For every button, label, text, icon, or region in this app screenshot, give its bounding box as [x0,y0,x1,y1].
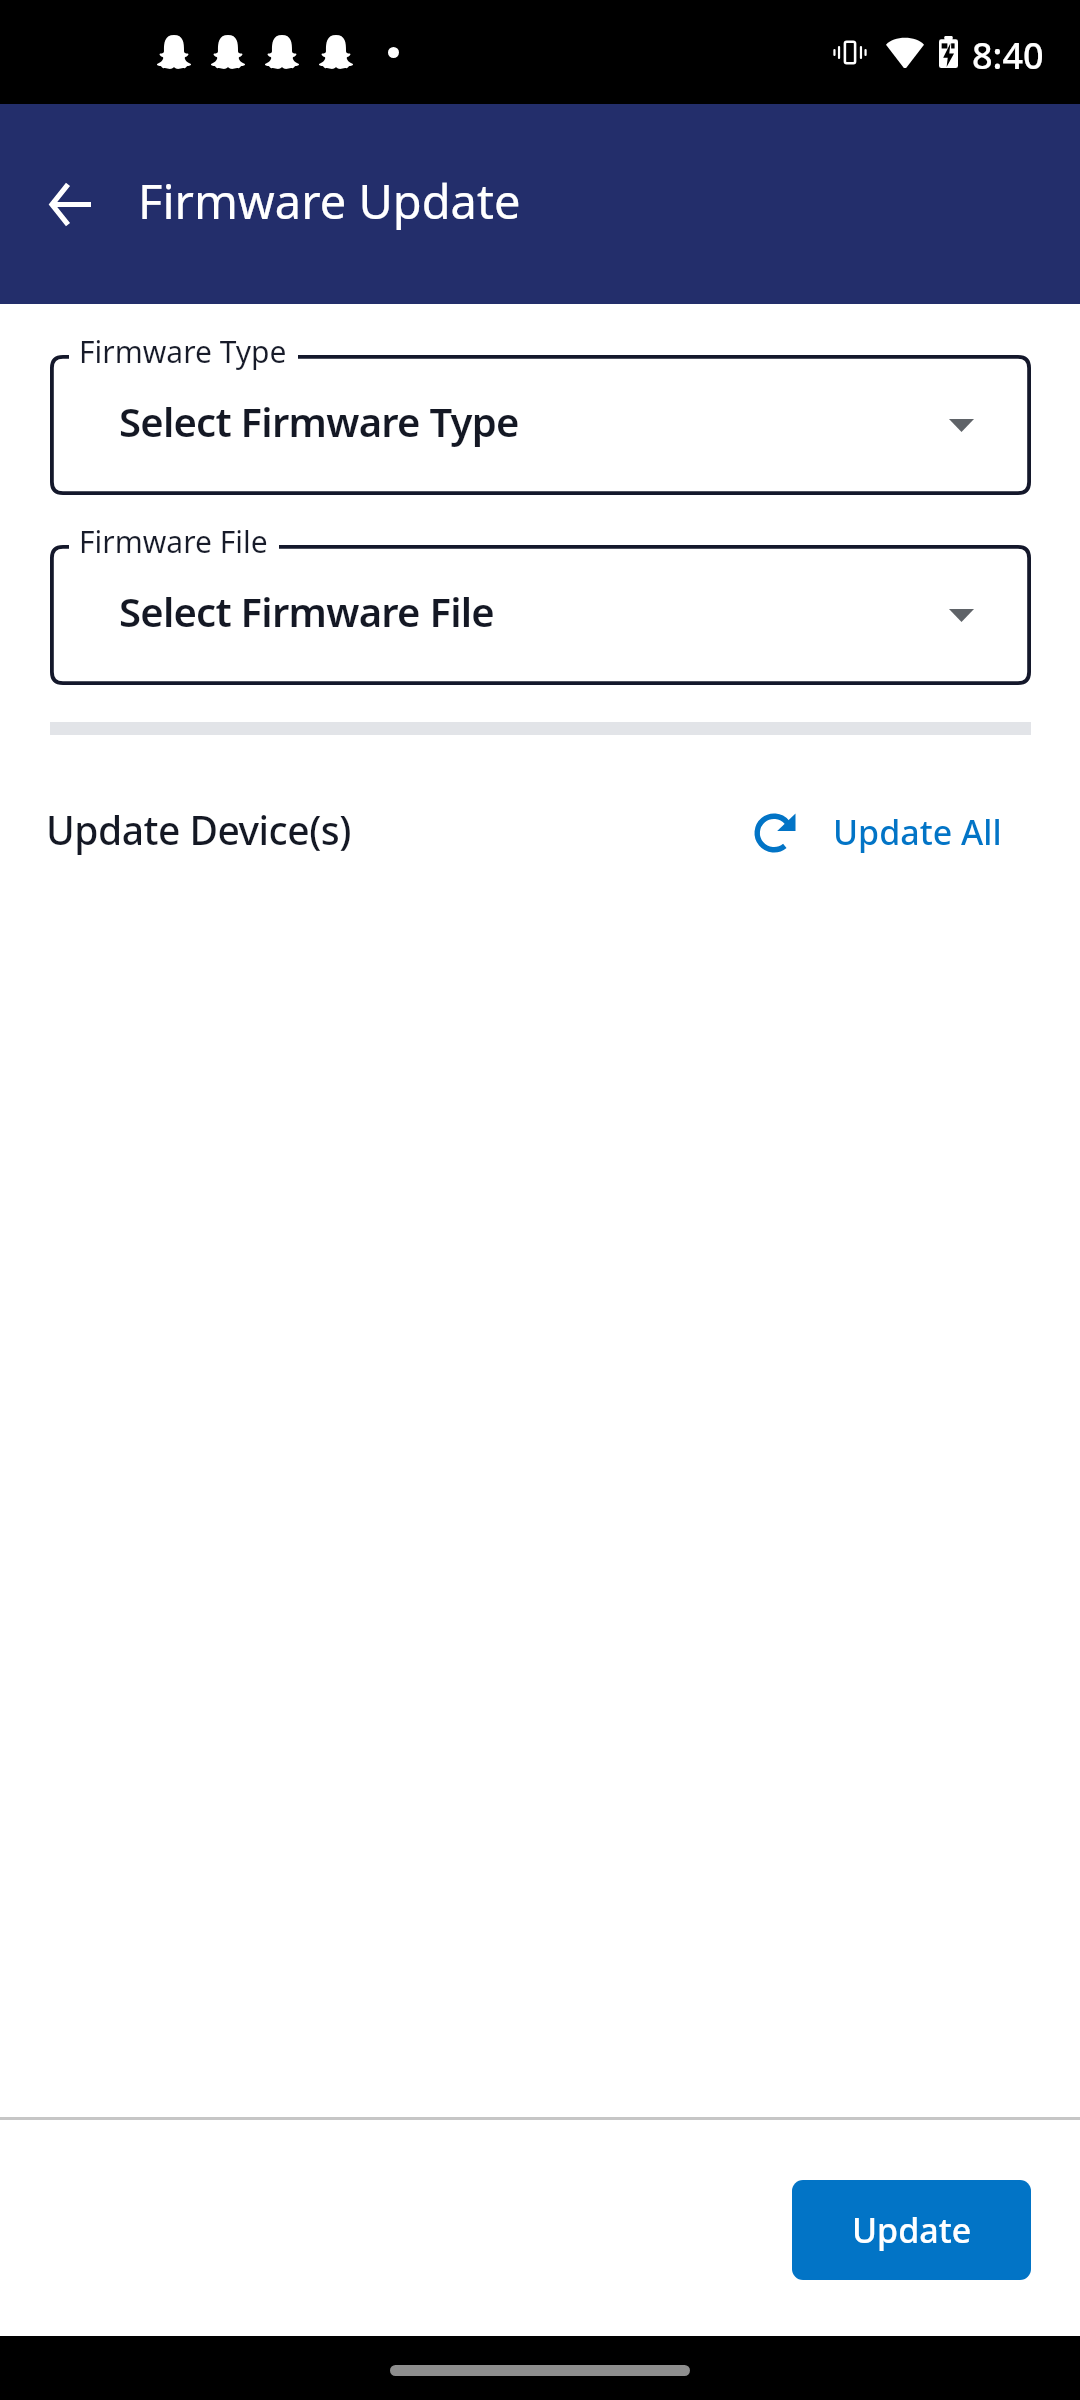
staticText: Update [852,2207,972,2253]
staticText: Select Firmware Type [119,394,519,448]
staticText: Firmware File [79,521,268,562]
button[interactable]: Navigate back [25,159,115,249]
staticText: Select Firmware File [119,584,494,638]
staticText: Update Device(s) [46,803,351,856]
staticText: 8:40 [972,31,1044,80]
staticText: Update All [833,809,1002,855]
button[interactable]: Select Firmware Type [50,355,1031,495]
button[interactable]: Update [792,2180,1031,2280]
staticText: Firmware Type [79,331,287,372]
button[interactable]: Select Firmware File [50,545,1031,685]
staticText: Firmware Update [138,169,521,233]
button[interactable]: Update All [734,792,1016,866]
